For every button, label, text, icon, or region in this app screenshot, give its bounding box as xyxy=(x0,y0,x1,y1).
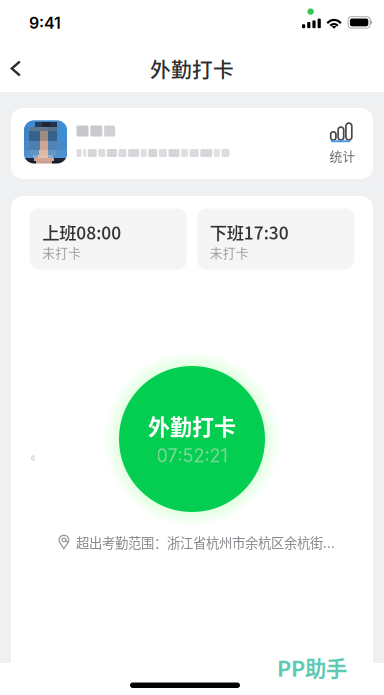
staticText: 未打卡 xyxy=(210,243,249,261)
button[interactable]: 统计 xyxy=(320,108,360,179)
staticText: 上班08:00 xyxy=(42,219,121,245)
button[interactable]: 上班08:00 xyxy=(30,208,187,269)
button[interactable]: 外勤打卡 xyxy=(119,366,265,512)
button[interactable]: 返回 xyxy=(0,47,37,90)
button[interactable]: 统计 xyxy=(11,108,373,179)
staticText: 外勤打卡 xyxy=(150,53,234,83)
staticText: 未打卡 xyxy=(42,243,81,261)
staticText: 07:52:21 xyxy=(156,445,227,467)
staticText: 下班17:30 xyxy=(210,219,289,245)
staticText: 统计 xyxy=(329,146,355,165)
staticText: 6 xyxy=(31,454,35,462)
staticText: 9:41 xyxy=(29,13,61,33)
staticText: 超出考勤范围：浙江省杭州市余杭区余杭街... xyxy=(76,532,335,552)
staticText: PP助手 xyxy=(277,652,347,683)
button[interactable]: 下班17:30 xyxy=(197,208,354,269)
staticText: 外勤打卡 xyxy=(148,409,236,441)
